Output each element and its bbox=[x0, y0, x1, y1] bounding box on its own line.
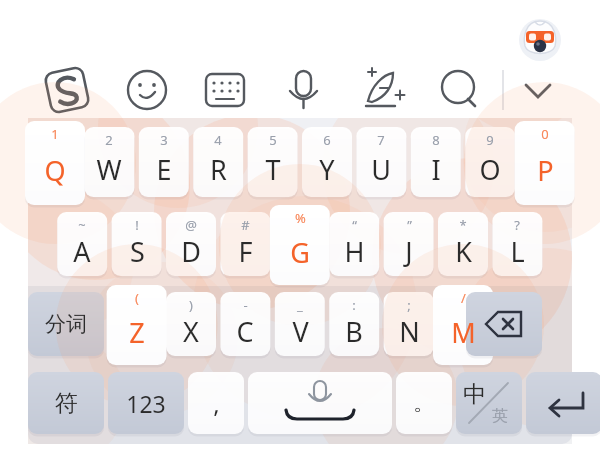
staticText: 5 bbox=[269, 131, 277, 149]
staticText: M bbox=[451, 314, 476, 351]
button[interactable]: 9 bbox=[465, 127, 515, 197]
staticText: _ bbox=[297, 296, 303, 314]
staticText: ! bbox=[135, 216, 139, 234]
staticText: 中 bbox=[463, 380, 486, 409]
button[interactable]: _ bbox=[275, 292, 325, 356]
button[interactable]: 0 bbox=[515, 121, 575, 205]
staticText: 8 bbox=[432, 131, 440, 149]
button[interactable]: Backspace bbox=[466, 292, 542, 356]
staticText: P bbox=[537, 152, 554, 189]
staticText: O bbox=[479, 151, 501, 188]
staticText: H bbox=[344, 233, 365, 270]
staticText: / bbox=[461, 289, 466, 307]
staticText: W bbox=[96, 151, 122, 188]
button[interactable]: 符 bbox=[28, 372, 104, 434]
button[interactable]: / bbox=[433, 285, 493, 365]
button[interactable]: 5 bbox=[248, 127, 298, 197]
button[interactable]: ” bbox=[384, 212, 434, 276]
staticText: Z bbox=[129, 314, 145, 351]
button[interactable]: ; bbox=[384, 292, 434, 356]
staticText: R bbox=[210, 151, 227, 188]
button[interactable]: ) bbox=[166, 292, 216, 356]
staticText: “ bbox=[352, 216, 357, 234]
staticText: F bbox=[238, 233, 253, 270]
staticText: ; bbox=[407, 296, 411, 314]
staticText: 9 bbox=[486, 131, 494, 149]
button[interactable]: ! bbox=[112, 212, 162, 276]
button[interactable]: ( bbox=[107, 285, 167, 365]
staticText: G bbox=[290, 234, 310, 271]
button[interactable]: ? bbox=[492, 212, 542, 276]
staticText: T bbox=[265, 151, 281, 188]
staticText: 英 bbox=[492, 406, 508, 426]
button[interactable]: Space bbox=[248, 372, 392, 434]
staticText: # bbox=[241, 216, 250, 234]
staticText: Q bbox=[44, 152, 66, 189]
button[interactable]: Keyboard layout bbox=[201, 66, 249, 114]
button[interactable]: Emoji bbox=[123, 66, 171, 114]
staticText: ? bbox=[514, 216, 520, 234]
staticText: Y bbox=[319, 151, 335, 188]
staticText: S bbox=[130, 233, 145, 270]
button[interactable]: , bbox=[188, 372, 244, 434]
staticText: D bbox=[181, 233, 201, 270]
staticText: B bbox=[345, 313, 363, 350]
button[interactable]: @ bbox=[166, 212, 216, 276]
staticText: 0 bbox=[541, 125, 549, 143]
staticText: I bbox=[431, 151, 441, 188]
button[interactable]: 123 bbox=[108, 372, 184, 434]
button[interactable]: : bbox=[329, 292, 379, 356]
staticText: 4 bbox=[214, 131, 222, 149]
staticText: 6 bbox=[323, 131, 331, 149]
button[interactable]: 3 bbox=[139, 127, 189, 197]
staticText: 1 bbox=[51, 125, 59, 143]
button[interactable]: Handwriting bbox=[358, 66, 406, 114]
button[interactable]: % bbox=[270, 205, 330, 285]
button[interactable]: 4 bbox=[193, 127, 243, 197]
staticText: % bbox=[295, 209, 306, 227]
button[interactable]: 1 bbox=[25, 121, 85, 205]
staticText: J bbox=[405, 233, 413, 270]
staticText: , bbox=[213, 387, 220, 420]
staticText: X bbox=[183, 313, 199, 350]
button[interactable]: ~ bbox=[57, 212, 107, 276]
staticText: V bbox=[292, 313, 309, 350]
button[interactable]: Voice input bbox=[279, 66, 327, 114]
button[interactable]: 分词 bbox=[28, 292, 104, 356]
staticText: ) bbox=[189, 296, 193, 314]
button[interactable]: Collapse keyboard bbox=[514, 66, 562, 114]
button[interactable]: Search bbox=[435, 66, 483, 114]
button[interactable]: 。 bbox=[396, 372, 452, 434]
staticText: K bbox=[455, 233, 472, 270]
staticText: - bbox=[243, 296, 248, 314]
button[interactable]: 7 bbox=[356, 127, 406, 197]
staticText: 2 bbox=[105, 131, 113, 149]
button[interactable]: - bbox=[220, 292, 270, 356]
staticText: A bbox=[73, 233, 91, 270]
staticText: L bbox=[510, 233, 525, 270]
staticText: 123 bbox=[126, 388, 166, 419]
button[interactable]: Enter bbox=[526, 372, 600, 434]
staticText: : bbox=[352, 296, 356, 314]
button[interactable]: Chinese English toggle bbox=[456, 372, 522, 434]
staticText: 。 bbox=[413, 389, 435, 417]
button[interactable]: 2 bbox=[84, 127, 134, 197]
staticText: 3 bbox=[160, 131, 168, 149]
staticText: ( bbox=[135, 289, 139, 307]
button[interactable]: Mascot assistant bbox=[518, 18, 562, 62]
button[interactable]: “ bbox=[329, 212, 379, 276]
button[interactable]: # bbox=[220, 212, 270, 276]
staticText: C bbox=[236, 313, 254, 350]
staticText: * bbox=[459, 216, 467, 234]
staticText: E bbox=[156, 151, 172, 188]
staticText: 分词 bbox=[45, 311, 87, 337]
staticText: 符 bbox=[55, 389, 78, 418]
staticText: N bbox=[399, 313, 420, 350]
button[interactable]: 6 bbox=[302, 127, 352, 197]
staticText: @ bbox=[185, 216, 197, 234]
staticText: U bbox=[371, 151, 391, 188]
button[interactable]: Sogou keyboard bbox=[43, 66, 91, 114]
button[interactable]: 8 bbox=[411, 127, 461, 197]
button[interactable]: * bbox=[438, 212, 488, 276]
staticText: ~ bbox=[78, 216, 86, 234]
